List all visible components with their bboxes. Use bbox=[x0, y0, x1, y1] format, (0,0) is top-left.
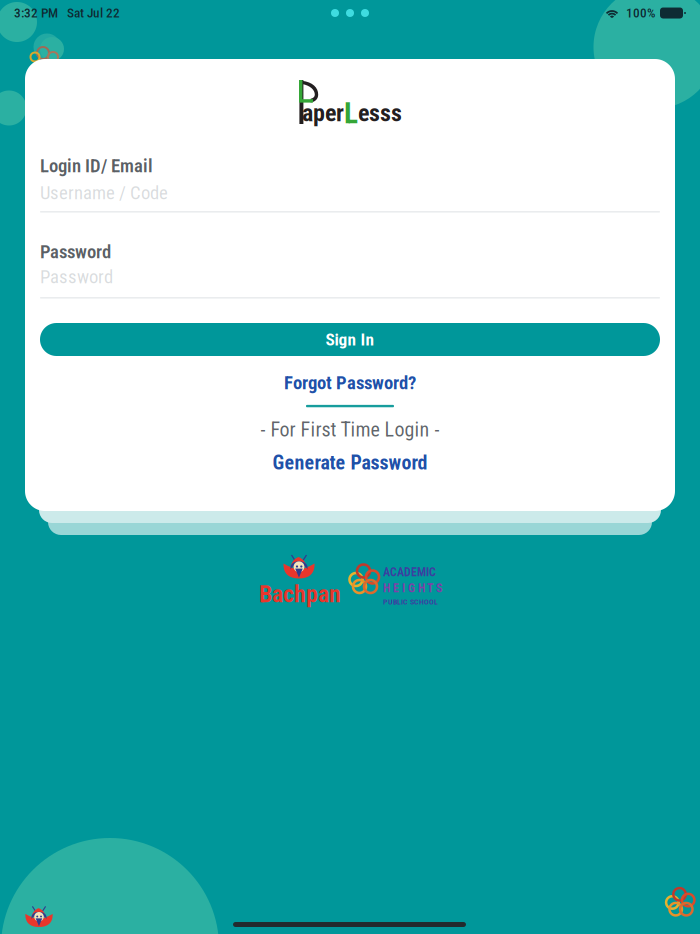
button[interactable]: Sign In bbox=[40, 323, 660, 356]
staticText: 3:32 PM bbox=[14, 5, 58, 21]
staticText: esss bbox=[358, 99, 402, 127]
staticText: aper bbox=[302, 99, 344, 127]
staticText: Forgot Password? bbox=[284, 372, 416, 394]
staticText: Username / Code bbox=[40, 182, 168, 204]
staticText: Sat Jul 22 bbox=[67, 5, 120, 21]
staticText: PUBLIC SCHOOL bbox=[383, 597, 438, 606]
staticText: Login ID/ Email bbox=[40, 155, 153, 177]
staticText: Sign In bbox=[325, 329, 374, 350]
staticText: L bbox=[344, 96, 358, 130]
staticText: - For First Time Login - bbox=[260, 418, 439, 441]
button[interactable]: Generate Password bbox=[272, 451, 427, 474]
staticText: 100% bbox=[626, 5, 655, 21]
staticText: Password bbox=[40, 266, 113, 288]
staticText: ACADEMIC bbox=[383, 565, 436, 579]
staticText: Generate Password bbox=[272, 451, 427, 474]
staticText: H E I G H T S bbox=[383, 581, 442, 595]
staticText: Password bbox=[40, 241, 111, 263]
staticText: Bachpan bbox=[259, 580, 341, 608]
button[interactable]: Forgot Password? bbox=[284, 372, 416, 407]
